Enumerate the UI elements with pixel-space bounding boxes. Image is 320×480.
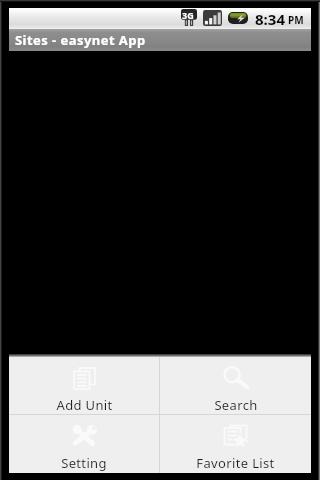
- button[interactable]: Add Unit: [9, 357, 159, 414]
- staticText: Search: [214, 396, 258, 414]
- button[interactable]: Favorite List: [160, 415, 311, 473]
- other: Battery charging: [228, 12, 248, 24]
- staticText: Favorite List: [196, 454, 275, 472]
- staticText: PM: [288, 13, 304, 27]
- staticText: Sites - easynet App: [15, 31, 146, 49]
- staticText: 3G: [182, 9, 194, 21]
- other: Signal strength: [203, 10, 222, 26]
- staticText: Add Unit: [56, 396, 113, 414]
- staticText: Setting: [61, 454, 107, 472]
- staticText: 8:34: [255, 9, 285, 29]
- button[interactable]: Search: [160, 357, 311, 414]
- other: 3G mobile data: [181, 9, 197, 27]
- button[interactable]: Setting: [9, 415, 159, 473]
